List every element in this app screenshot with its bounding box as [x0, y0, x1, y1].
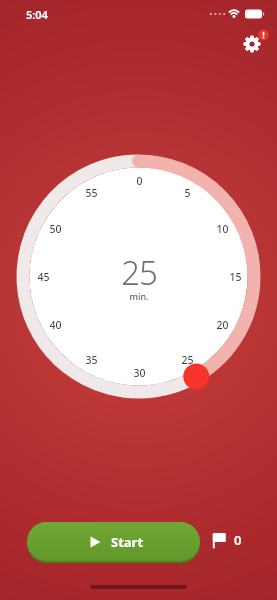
- staticText: 5: [184, 186, 191, 200]
- staticText: 40: [49, 318, 62, 332]
- staticText: 5:04: [26, 7, 48, 22]
- staticText: 0: [234, 531, 242, 549]
- staticText: min.: [129, 290, 149, 302]
- staticText: 15: [229, 270, 242, 284]
- staticText: 25: [121, 250, 157, 292]
- staticText: 25: [181, 353, 194, 367]
- staticText: 0: [136, 174, 143, 188]
- button[interactable]: 0: [211, 529, 253, 551]
- staticText: 30: [133, 366, 146, 380]
- staticText: 55: [85, 186, 98, 200]
- staticText: 35: [85, 353, 98, 367]
- staticText: 50: [49, 222, 62, 236]
- button[interactable]: [236, 27, 268, 59]
- staticText: 45: [37, 270, 50, 284]
- staticText: 20: [216, 318, 229, 332]
- staticText: 10: [216, 222, 229, 236]
- staticText: Start: [111, 533, 144, 551]
- button[interactable]: Start: [27, 522, 200, 561]
